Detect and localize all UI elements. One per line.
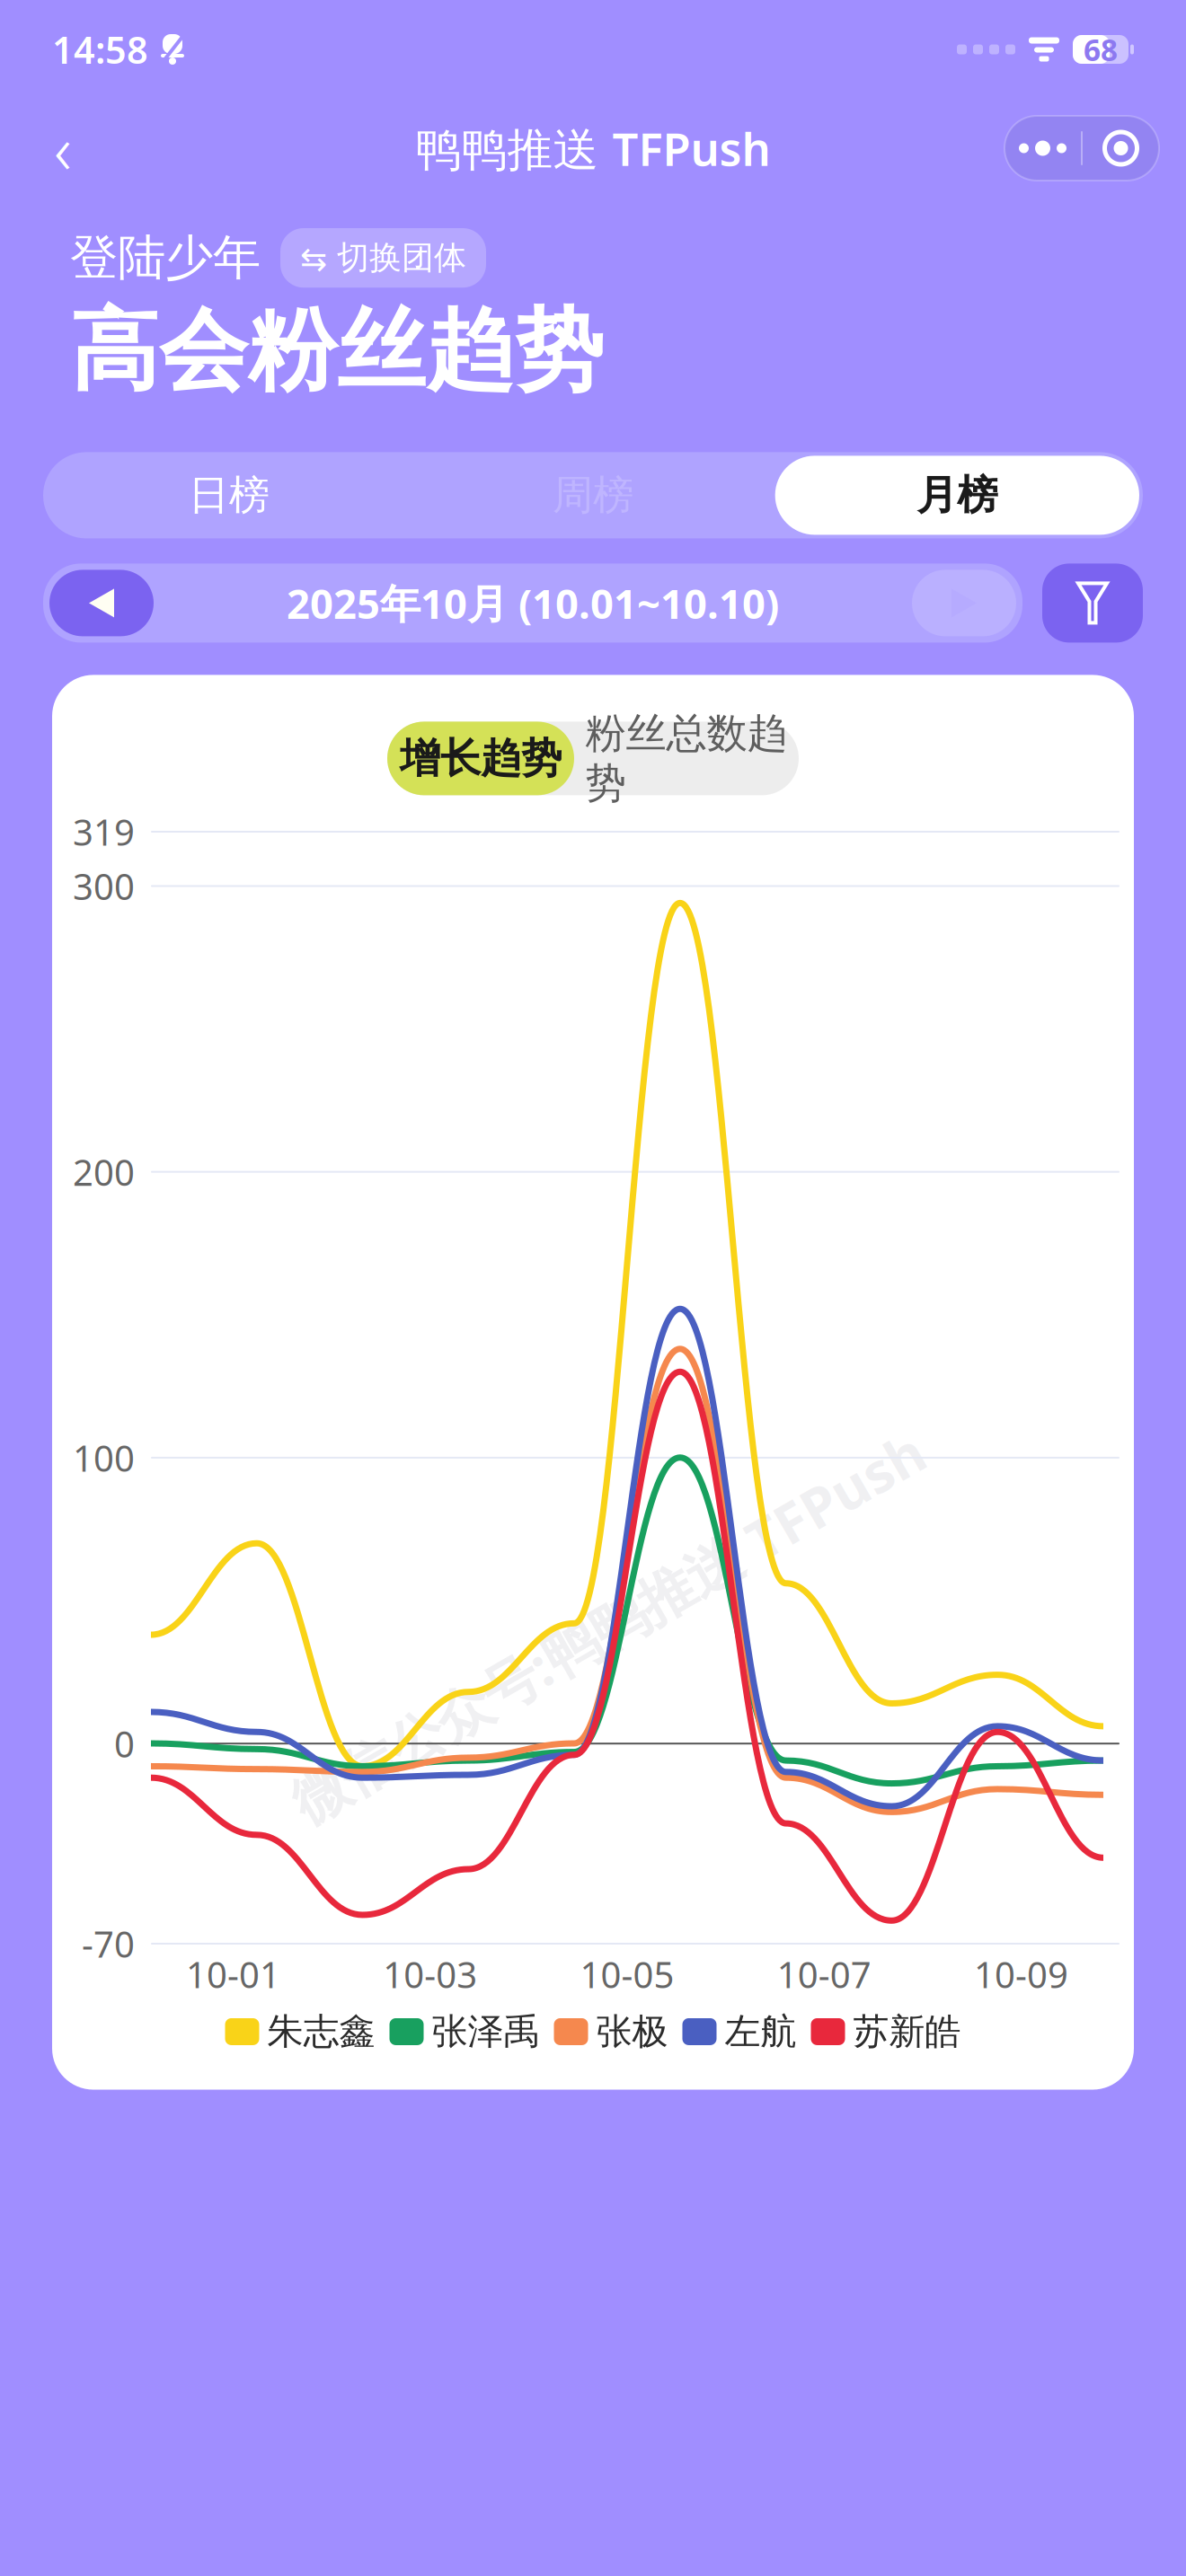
staticText: 0 xyxy=(114,1720,135,1767)
staticText: 10-09 xyxy=(974,1950,1068,1998)
staticText: 100 xyxy=(73,1434,135,1482)
staticText: 200 xyxy=(73,1148,135,1196)
staticText: 10-01 xyxy=(186,1950,280,1998)
button[interactable]: 日榜 xyxy=(47,456,411,535)
staticText: ‹ xyxy=(54,104,72,193)
staticText: 68 xyxy=(1084,30,1118,69)
staticText: 10-03 xyxy=(383,1950,477,1998)
staticText: 300 xyxy=(73,862,135,910)
button[interactable]: Previous month xyxy=(49,570,154,636)
button[interactable]: Close xyxy=(1083,116,1159,181)
staticText: 增长趋势 xyxy=(400,733,562,783)
button[interactable]: Filter xyxy=(1042,564,1143,643)
staticText: 微信公众号:鸭鸭推送 TFPush xyxy=(248,1590,968,1663)
staticText: 苏新皓 xyxy=(853,2010,961,2054)
button[interactable]: 粉丝总数趋势 xyxy=(574,722,799,795)
staticText: 日榜 xyxy=(188,470,269,520)
staticText: 登陆少年 xyxy=(70,228,261,287)
staticText: -70 xyxy=(82,1920,135,1967)
staticText: 2025年10月 (10.01~10.10) xyxy=(287,576,779,630)
button[interactable]: More xyxy=(1005,116,1081,181)
button[interactable]: 月榜 xyxy=(775,456,1139,535)
staticText: 左航 xyxy=(725,2010,797,2054)
staticText: 14:58 xyxy=(52,25,148,74)
button[interactable]: ⇆ 切换团体 xyxy=(280,228,486,288)
staticText: 张泽禹 xyxy=(432,2010,540,2054)
staticText: 鸭鸭推送 TFPush xyxy=(416,118,770,178)
staticText: 10-05 xyxy=(580,1950,674,1998)
staticText: 粉丝总数趋势 xyxy=(585,708,788,808)
button[interactable]: Next month xyxy=(912,570,1016,636)
staticText: 朱志鑫 xyxy=(267,2010,375,2054)
button[interactable]: 周榜 xyxy=(411,456,775,535)
staticText: ⇆ 切换团体 xyxy=(300,238,466,278)
button[interactable]: 增长趋势 xyxy=(387,722,574,795)
staticText: 高会粉丝趋势 xyxy=(70,297,604,405)
staticText: 319 xyxy=(73,808,135,856)
staticText: 张极 xyxy=(596,2010,668,2054)
staticText: 周榜 xyxy=(553,470,633,520)
staticText: 10-07 xyxy=(777,1950,871,1998)
staticText: 月榜 xyxy=(917,470,998,520)
button[interactable]: Back xyxy=(27,112,99,184)
